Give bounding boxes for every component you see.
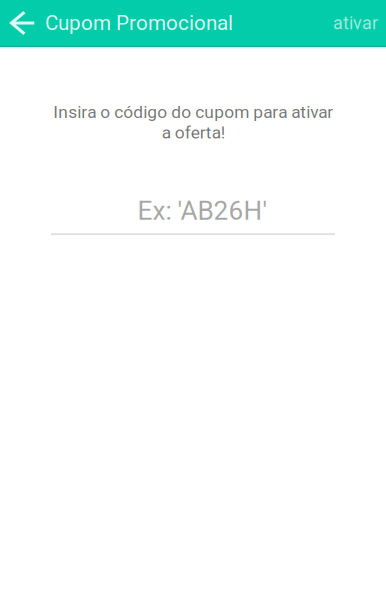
staticText: ativar: [333, 12, 378, 34]
button[interactable]: ativar: [317, 0, 386, 46]
button[interactable]: Código do cupom: [51, 143, 335, 235]
staticText: Ex: 'AB26H': [137, 196, 267, 226]
staticText: Insira o código do cupom para ativar a o…: [53, 102, 333, 143]
staticText: Cupom Promocional: [45, 11, 233, 35]
button[interactable]: Back: [0, 0, 45, 46]
